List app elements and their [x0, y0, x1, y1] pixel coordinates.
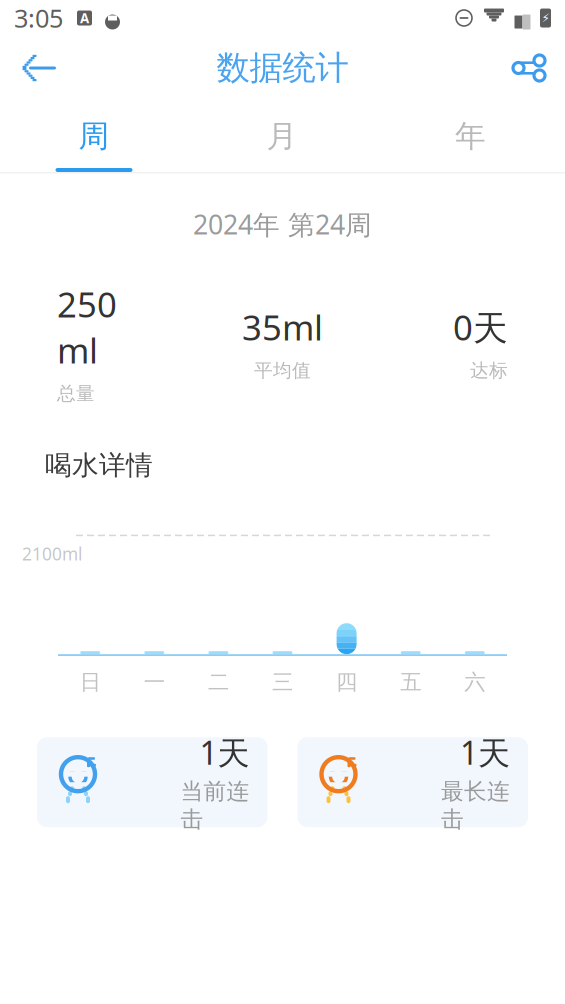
button[interactable]: 周 [0, 100, 188, 172]
staticText: A [80, 9, 89, 27]
staticText: 1天 [199, 731, 249, 774]
staticText: 三 [272, 669, 293, 695]
staticText: 2100ml [22, 542, 82, 565]
staticText: 五 [400, 669, 421, 695]
staticText: 35ml [242, 304, 323, 350]
staticText: 3:05 [14, 1, 63, 35]
button[interactable]: 年 [376, 100, 565, 172]
staticText: 喝水详情 [45, 449, 153, 482]
staticText: 六 [464, 669, 485, 695]
staticText: 数据统计 [216, 47, 348, 88]
staticText: 一 [144, 669, 165, 695]
staticText: 四 [336, 669, 357, 695]
staticText: 0天 [453, 304, 508, 350]
staticText: 二 [208, 669, 229, 695]
staticText: 周 [78, 117, 109, 155]
staticText: 平均值 [254, 359, 311, 382]
button[interactable]: 返回 [0, 42, 70, 94]
staticText: 年 [455, 117, 486, 155]
button[interactable]: 1天 [37, 737, 267, 827]
button[interactable]: 分享 [499, 42, 565, 94]
button[interactable]: 1天 [297, 737, 528, 827]
staticText: 月 [266, 117, 297, 155]
button[interactable]: 月 [188, 100, 376, 172]
staticText: 日 [80, 669, 101, 695]
staticText: 最长连击 [441, 778, 510, 833]
staticText: 达标 [470, 359, 508, 382]
staticText: 总量 [57, 382, 95, 405]
staticText: ⚡︎ [541, 11, 549, 25]
staticText: 当前连击 [180, 778, 249, 833]
staticText: 1天 [460, 731, 510, 774]
staticText: 250ml [57, 281, 117, 373]
staticText: 2024年 第24周 [193, 206, 372, 242]
